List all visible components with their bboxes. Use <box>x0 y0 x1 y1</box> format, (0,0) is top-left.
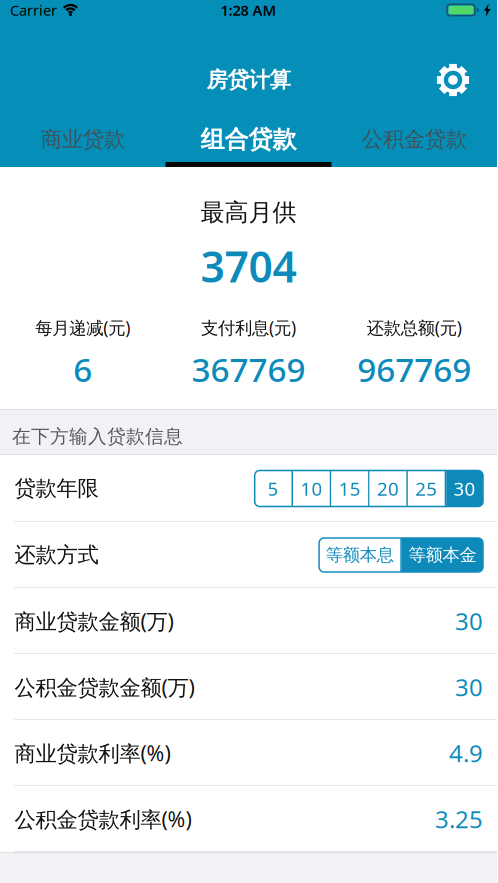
staticText: 商业贷款 <box>41 126 125 153</box>
staticText: 967769 <box>357 347 471 391</box>
button[interactable]: 10 <box>293 470 330 506</box>
staticText: 15 <box>339 476 361 501</box>
button[interactable]: 商业贷款 <box>0 126 166 153</box>
button[interactable]: 公积金贷款 <box>331 126 497 153</box>
staticText: 367769 <box>191 347 305 391</box>
staticText: 支付利息(元) <box>201 316 296 339</box>
button[interactable]: 30 <box>446 470 483 506</box>
staticText: 1:28 AM <box>220 0 276 20</box>
staticText: 贷款年限 <box>14 475 98 502</box>
staticText: 商业贷款利率(%) <box>14 739 170 767</box>
staticText: 每月递减(元) <box>35 316 130 339</box>
staticText: 公积金贷款利率(%) <box>14 805 191 833</box>
staticText: 30 <box>455 605 483 637</box>
staticText: 3704 <box>200 238 296 294</box>
staticText: 10 <box>300 476 322 501</box>
button[interactable]: 等额本金 <box>402 538 483 572</box>
button[interactable]: 20 <box>370 470 406 506</box>
staticText: 等额本息 <box>326 544 394 566</box>
button[interactable]: 商业贷款金额(万) <box>0 588 497 654</box>
staticText: 在下方输入贷款信息 <box>12 425 183 448</box>
staticText: 公积金贷款金额(万) <box>14 673 194 701</box>
staticText: Carrier <box>10 0 57 20</box>
staticText: 商业贷款金额(万) <box>14 607 173 635</box>
staticText: 组合贷款 <box>200 125 296 154</box>
button[interactable]: 5 <box>255 470 291 506</box>
staticText: 30 <box>454 476 476 501</box>
staticText: 4.9 <box>449 737 483 769</box>
staticText: 3.25 <box>435 803 483 835</box>
staticText: 等额本金 <box>408 544 476 566</box>
staticText: 30 <box>455 671 483 703</box>
staticText: 还款总额(元) <box>367 316 462 339</box>
staticText: 25 <box>415 476 437 501</box>
button[interactable]: 公积金贷款金额(万) <box>0 654 497 720</box>
button[interactable]: 15 <box>331 470 368 506</box>
staticText: 公积金贷款 <box>362 126 467 153</box>
staticText: 还款方式 <box>14 542 98 568</box>
button[interactable]: 25 <box>408 470 445 506</box>
staticText: 房贷计算 <box>206 67 290 93</box>
button[interactable]: Settings <box>436 63 470 97</box>
staticText: 6 <box>73 347 92 391</box>
button[interactable]: 等额本息 <box>319 538 400 572</box>
button[interactable]: 组合贷款 <box>166 125 331 154</box>
staticText: 最高月供 <box>200 198 296 227</box>
staticText: 20 <box>377 476 399 501</box>
button[interactable]: 商业贷款利率(%) <box>0 720 497 786</box>
staticText: 5 <box>268 476 279 501</box>
button[interactable]: 公积金贷款利率(%) <box>0 786 497 852</box>
